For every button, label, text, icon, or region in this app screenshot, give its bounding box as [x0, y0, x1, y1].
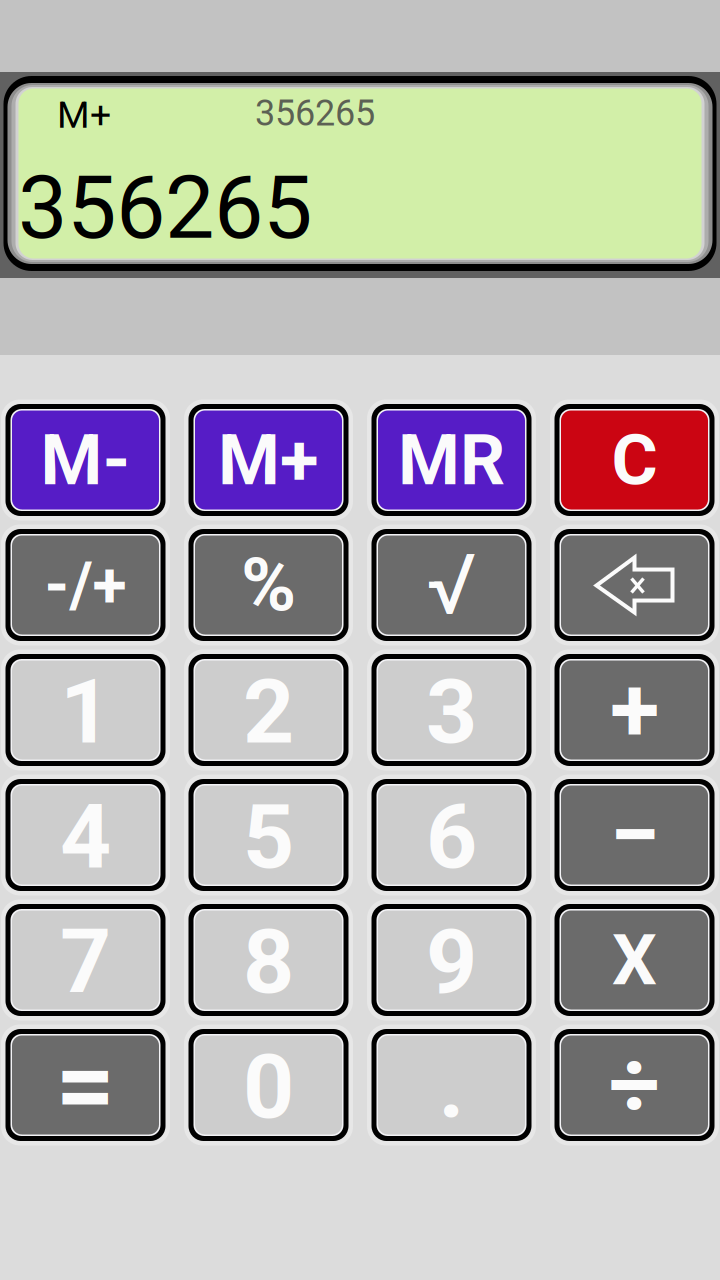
button[interactable]: 7: [5, 904, 165, 1016]
staticText: M+: [57, 93, 111, 137]
staticText: .: [438, 1035, 464, 1139]
button[interactable]: 0: [188, 1029, 348, 1141]
button[interactable]: Plus: [554, 654, 714, 766]
staticText: 7: [60, 910, 111, 1014]
staticText: 4: [60, 785, 111, 889]
staticText: +: [610, 657, 659, 763]
button[interactable]: Backspace: [554, 529, 714, 641]
button[interactable]: Square root: [371, 529, 531, 641]
staticText: 6: [426, 785, 477, 889]
button[interactable]: 2: [188, 654, 348, 766]
button[interactable]: 8: [188, 904, 348, 1016]
staticText: -/+: [44, 548, 126, 622]
button[interactable]: 4: [5, 779, 165, 891]
button[interactable]: Memory subtract: [5, 404, 165, 516]
staticText: 0: [243, 1035, 294, 1139]
staticText: ÷: [608, 1032, 660, 1138]
staticText: 356265: [255, 92, 375, 134]
staticText: −: [609, 782, 659, 888]
button[interactable]: Minus: [554, 779, 714, 891]
staticText: MR: [398, 419, 505, 501]
staticText: M-: [40, 419, 130, 501]
button[interactable]: 1: [5, 654, 165, 766]
button[interactable]: 9: [371, 904, 531, 1016]
button[interactable]: Memory add: [188, 404, 348, 516]
staticText: C: [611, 419, 657, 501]
staticText: M+: [218, 419, 319, 501]
staticText: 5: [243, 785, 294, 889]
button[interactable]: Divide: [554, 1029, 714, 1141]
button[interactable]: Clear: [554, 404, 714, 516]
button[interactable]: Plus minus: [5, 529, 165, 641]
button[interactable]: 6: [371, 779, 531, 891]
staticText: 356265: [18, 156, 312, 259]
staticText: √: [426, 536, 476, 634]
button[interactable]: Percent: [188, 529, 348, 641]
staticText: 3: [426, 660, 477, 764]
staticText: %: [241, 541, 296, 629]
staticText: X: [612, 919, 657, 1001]
staticText: 2: [243, 660, 294, 764]
button[interactable]: Decimal point: [371, 1029, 531, 1141]
button[interactable]: Equals: [5, 1029, 165, 1141]
staticText: 1: [60, 660, 111, 764]
button[interactable]: 3: [371, 654, 531, 766]
staticText: 8: [243, 910, 294, 1014]
button[interactable]: Multiply: [554, 904, 714, 1016]
staticText: =: [55, 1024, 115, 1146]
button[interactable]: 5: [188, 779, 348, 891]
button[interactable]: Memory recall: [371, 404, 531, 516]
staticText: 9: [426, 910, 477, 1014]
